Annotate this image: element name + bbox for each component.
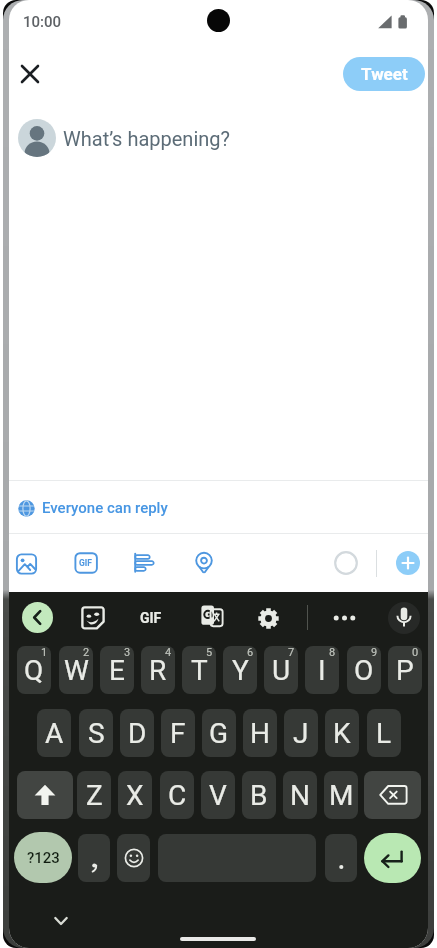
button[interactable] xyxy=(117,834,150,882)
button[interactable]: D xyxy=(120,709,154,757)
button[interactable]: R xyxy=(141,646,175,694)
button[interactable]: U xyxy=(264,646,298,694)
staticText: H xyxy=(250,717,270,750)
button[interactable]: GIF xyxy=(75,552,96,574)
staticText: J xyxy=(293,717,309,750)
staticText: 2 xyxy=(83,646,90,659)
staticText: L xyxy=(376,717,392,750)
button[interactable]: G xyxy=(202,709,236,757)
button[interactable]: J xyxy=(284,709,318,757)
staticText: I xyxy=(318,654,326,687)
button[interactable]: Q xyxy=(17,646,51,694)
staticText: 6 xyxy=(247,646,254,659)
button[interactable] xyxy=(78,834,110,882)
button[interactable]: Y xyxy=(223,646,257,694)
button[interactable] xyxy=(396,551,420,575)
button[interactable] xyxy=(325,834,357,882)
button[interactable]: ?123 xyxy=(14,832,72,883)
button[interactable]: V xyxy=(201,771,235,819)
staticText: V xyxy=(209,779,227,812)
button[interactable] xyxy=(17,771,73,819)
button[interactable]: GIF xyxy=(129,604,173,632)
button[interactable]: Everyone can reply xyxy=(15,495,215,521)
button[interactable]: O xyxy=(347,646,381,694)
button[interactable] xyxy=(22,602,53,633)
button[interactable]: A xyxy=(37,709,71,757)
staticText: 8 xyxy=(329,646,336,659)
button[interactable]: X xyxy=(118,771,152,819)
staticText: 7 xyxy=(288,646,295,659)
staticText: 1 xyxy=(41,646,48,659)
staticText: T xyxy=(191,654,208,687)
staticText: Everyone can reply xyxy=(42,499,168,517)
staticText: ?123 xyxy=(27,849,60,867)
staticText: What’s happening? xyxy=(63,127,230,150)
button[interactable]: E xyxy=(100,646,134,694)
button[interactable] xyxy=(364,771,421,819)
staticText: A xyxy=(45,717,64,750)
staticText: M xyxy=(329,779,354,812)
staticText: 10:00 xyxy=(23,13,62,31)
staticText: P xyxy=(396,654,414,687)
staticText: E xyxy=(109,654,125,687)
staticText: 9 xyxy=(371,646,378,659)
staticText: D xyxy=(128,717,147,750)
staticText: O xyxy=(354,654,374,687)
staticText: F xyxy=(170,717,186,750)
button[interactable] xyxy=(388,602,420,634)
button[interactable]: S xyxy=(79,709,113,757)
button[interactable] xyxy=(16,552,37,574)
staticText: Y xyxy=(232,654,249,687)
button[interactable]: F xyxy=(161,709,195,757)
button[interactable]: H xyxy=(243,709,277,757)
button[interactable]: K xyxy=(325,709,359,757)
staticText: 4 xyxy=(165,646,172,659)
button[interactable]: Z xyxy=(77,771,111,819)
button[interactable] xyxy=(256,606,281,631)
staticText: C xyxy=(168,779,187,812)
button[interactable] xyxy=(193,552,214,574)
button[interactable]: P xyxy=(388,646,422,694)
button[interactable] xyxy=(364,833,421,883)
button[interactable]: I xyxy=(305,646,339,694)
button[interactable] xyxy=(13,57,47,91)
staticText: GIF xyxy=(140,610,162,626)
button[interactable]: B xyxy=(242,771,276,819)
staticText: W xyxy=(64,654,89,687)
staticText: G xyxy=(209,717,229,750)
staticText: Tweet xyxy=(361,64,408,84)
staticText: Z xyxy=(86,779,103,812)
staticText: 3 xyxy=(124,646,131,659)
button[interactable] xyxy=(133,552,154,574)
staticText: 0 xyxy=(412,646,419,659)
button[interactable]: C xyxy=(160,771,194,819)
staticText: S xyxy=(88,717,105,750)
button[interactable] xyxy=(201,604,231,628)
staticText: U xyxy=(272,654,291,687)
button[interactable]: T xyxy=(182,646,216,694)
button[interactable]: W xyxy=(59,646,93,694)
staticText: GIF xyxy=(79,558,92,568)
staticText: R xyxy=(149,654,167,687)
button[interactable]: N xyxy=(283,771,317,819)
staticText: N xyxy=(290,779,310,812)
staticText: K xyxy=(333,717,351,750)
button[interactable]: M xyxy=(324,771,358,819)
staticText: B xyxy=(250,779,268,812)
staticText: 5 xyxy=(206,646,213,659)
button[interactable] xyxy=(81,606,105,630)
staticText: Q xyxy=(24,654,44,687)
button[interactable]: Tweet xyxy=(343,57,425,91)
staticText: X xyxy=(126,779,144,812)
button[interactable]: L xyxy=(367,709,401,757)
